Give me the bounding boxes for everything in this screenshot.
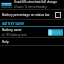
staticText: 4 hours 12 min on battery bbox=[14, 5, 47, 9]
staticText: Battery saver bbox=[2, 28, 22, 32]
staticText: BATTERY SAVER bbox=[2, 22, 25, 26]
other: Battery saver switch, on bbox=[48, 29, 63, 36]
other: Battery percentage on status bar checkbo… bbox=[55, 12, 61, 18]
staticText: at 15% battery level bbox=[2, 33, 27, 37]
button[interactable]: Battery percentage on status bar bbox=[0, 10, 64, 19]
button[interactable]: Battery usage graph bbox=[0, 0, 64, 9]
button[interactable]: Battery saver bbox=[0, 27, 64, 37]
staticText: Help bbox=[2, 40, 9, 44]
other: Battery usage graph bbox=[1, 2, 12, 8]
button[interactable]: Help bbox=[0, 38, 64, 45]
staticText: Used 6% since last full charge bbox=[14, 0, 57, 4]
staticText: Battery percentage on status bar bbox=[2, 13, 55, 17]
